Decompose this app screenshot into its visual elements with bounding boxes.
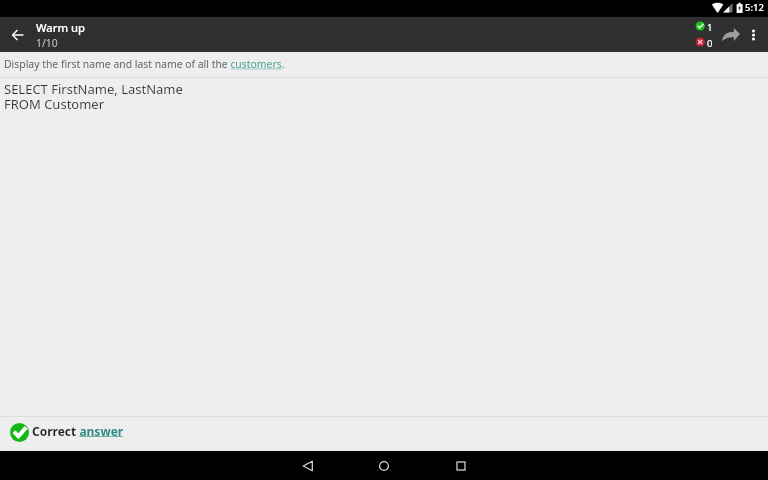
button[interactable]: Home bbox=[346, 451, 421, 480]
staticText: Warm up bbox=[36, 20, 85, 35]
button[interactable]: Score: 1 correct, 0 wrong bbox=[690, 17, 716, 52]
button[interactable]: Recent apps bbox=[423, 451, 498, 480]
staticText: Correct answer bbox=[32, 423, 124, 439]
button[interactable]: Display the first name and last name of … bbox=[0, 52, 768, 76]
staticText: SELECT FirstName, LastName FROM Customer bbox=[4, 80, 183, 113]
button[interactable]: More options bbox=[742, 17, 765, 52]
button[interactable]: Correct answer bbox=[0, 417, 768, 451]
staticText: 1 bbox=[707, 21, 713, 34]
button[interactable]: Navigate up bbox=[0, 17, 35, 52]
staticText: 1/10 bbox=[36, 36, 58, 50]
staticText: 0 bbox=[707, 37, 713, 50]
button[interactable]: Share bbox=[716, 17, 746, 52]
button[interactable]: SELECT FirstName, LastName FROM Customer bbox=[0, 80, 768, 416]
staticText: Display the first name and last name of … bbox=[4, 57, 285, 71]
button[interactable]: Warm up bbox=[36, 20, 156, 50]
staticText: 5:12 bbox=[745, 1, 764, 14]
button[interactable]: Back bbox=[270, 451, 346, 480]
